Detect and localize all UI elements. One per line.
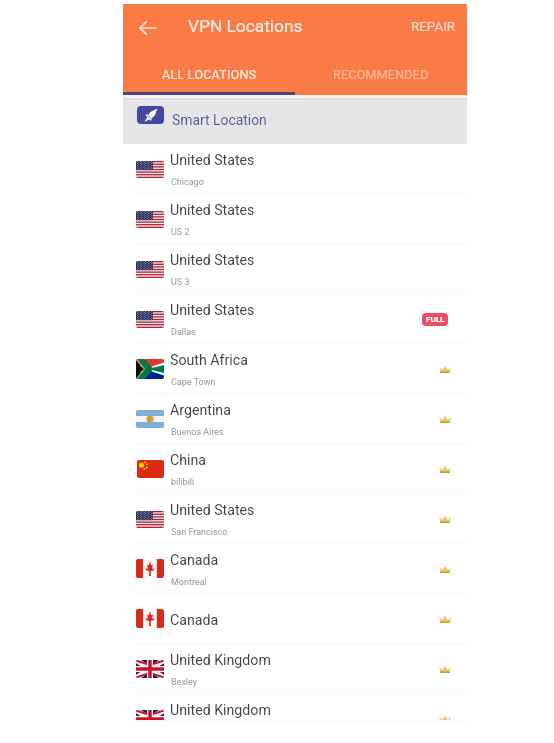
button[interactable]: RECOMMENDED <box>295 61 467 95</box>
button[interactable]: ALL LOCATIONS <box>123 61 295 95</box>
staticText: San Francisco <box>171 527 228 538</box>
staticText: Montreal <box>171 577 207 588</box>
staticText: FULL <box>426 315 445 324</box>
staticText: ALL LOCATIONS <box>162 67 257 82</box>
staticText: Canada <box>170 552 219 569</box>
button[interactable]: China <box>123 444 467 494</box>
button[interactable]: REPAIR <box>403 13 464 41</box>
staticText: bilibili <box>171 477 195 488</box>
button[interactable]: Argentina <box>123 394 467 444</box>
button[interactable]: Canada <box>123 544 467 594</box>
staticText: United Kingdom <box>170 652 271 669</box>
staticText: REPAIR <box>411 19 456 35</box>
staticText: South Africa <box>170 352 248 369</box>
staticText: Canada <box>170 612 219 629</box>
staticText: Dallas <box>171 327 196 338</box>
button[interactable]: Canada <box>123 594 467 644</box>
staticText: US 2 <box>171 227 190 238</box>
staticText: Buenos Aires <box>171 427 224 438</box>
button[interactable]: United Kingdom <box>123 694 467 721</box>
button[interactable]: United States <box>123 144 467 194</box>
staticText: Argentina <box>170 402 231 419</box>
staticText: United States <box>170 252 255 269</box>
staticText: United States <box>170 202 255 219</box>
staticText: United States <box>170 302 255 319</box>
button[interactable]: South Africa <box>123 344 467 394</box>
staticText: United Kingdom <box>170 702 271 719</box>
staticText: RECOMMENDED <box>333 67 429 82</box>
staticText: Chicago <box>171 177 204 188</box>
button[interactable]: United States <box>123 244 467 294</box>
staticText: US 3 <box>171 277 190 288</box>
staticText: Bexley <box>171 677 198 688</box>
staticText: Cape Town <box>171 377 216 388</box>
staticText: China <box>170 452 207 469</box>
staticText: United States <box>170 152 255 169</box>
button[interactable]: Back <box>125 5 170 50</box>
staticText: VPN Locations <box>188 16 303 36</box>
button[interactable]: United States <box>123 294 467 344</box>
button[interactable]: United States <box>123 494 467 544</box>
button[interactable]: United Kingdom <box>123 644 467 694</box>
staticText: Smart Location <box>172 112 267 128</box>
staticText: United States <box>170 502 255 519</box>
button[interactable]: Smart Location <box>123 100 467 144</box>
button[interactable]: United States <box>123 194 467 244</box>
